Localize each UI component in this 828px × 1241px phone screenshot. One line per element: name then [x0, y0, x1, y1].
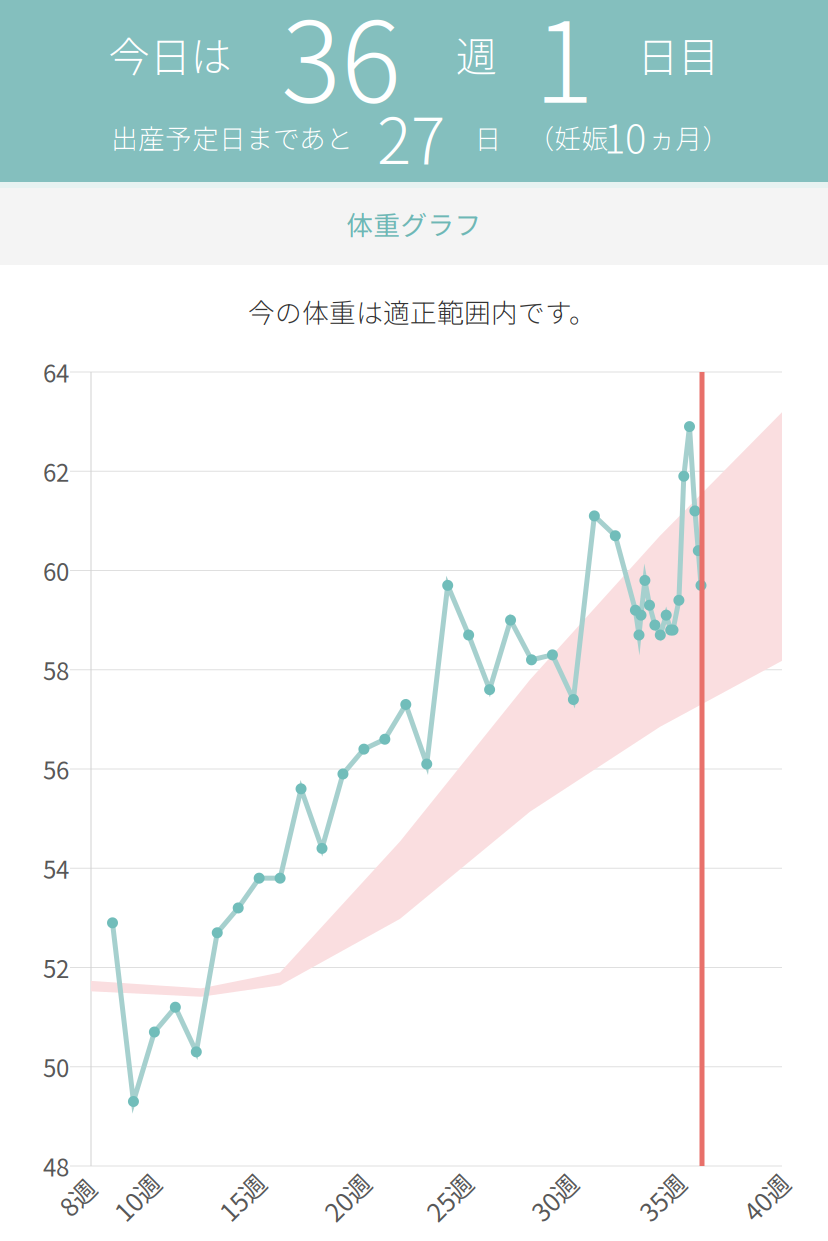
staticText: 40週 [739, 1179, 792, 1215]
button[interactable]: 体重グラフ [0, 182, 828, 265]
staticText: 10週 [110, 1179, 163, 1215]
staticText: （妊娠 [527, 118, 608, 156]
staticText: 54 [43, 851, 69, 886]
staticText: 36 [281, 0, 401, 135]
staticText: 日 [474, 118, 501, 156]
staticText: 27 [377, 90, 445, 182]
staticText: 1 [534, 0, 594, 135]
staticText: 35週 [635, 1179, 688, 1215]
staticText: 今の体重は適正範囲内です。 [248, 292, 596, 330]
staticText: 56 [43, 752, 69, 786]
staticText: 25週 [422, 1179, 475, 1215]
staticText: 60 [43, 553, 69, 588]
staticText: 出産予定日まであと [111, 118, 353, 156]
staticText: 今日は [108, 24, 231, 84]
staticText: 58 [43, 652, 69, 687]
staticText: 体重グラフ [346, 204, 481, 243]
staticText: 20週 [320, 1179, 373, 1215]
staticText: 8週 [57, 1179, 96, 1215]
staticText: 64 [43, 355, 69, 389]
staticText: 15週 [215, 1179, 268, 1215]
staticText: 週 [455, 24, 496, 84]
staticText: 30週 [527, 1179, 580, 1215]
staticText: 50 [43, 1049, 69, 1084]
staticText: 48 [43, 1149, 69, 1183]
staticText: 62 [43, 454, 69, 489]
staticText: ヵ月） [648, 118, 729, 156]
staticText: 日目 [637, 24, 719, 84]
staticText: 52 [43, 950, 69, 985]
staticText: 10 [604, 107, 646, 165]
